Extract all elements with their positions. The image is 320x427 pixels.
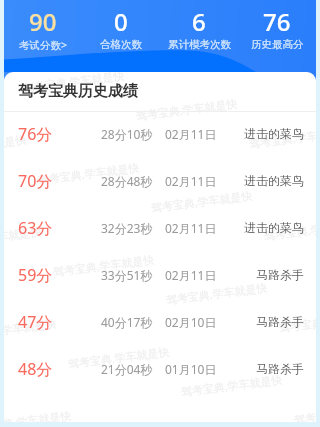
button[interactable]: 0 — [82, 5, 160, 51]
staticText: 28分10秒 — [101, 126, 153, 142]
staticText: 马路杀手 — [256, 267, 304, 282]
staticText: 历史最高分 — [251, 38, 304, 51]
button[interactable]: 59分 — [4, 253, 316, 300]
staticText: 马路杀手 — [256, 361, 304, 376]
staticText: 合格次数 — [100, 38, 142, 51]
staticText: 33分51秒 — [101, 267, 153, 283]
staticText: 21分04秒 — [101, 361, 153, 377]
staticText: 70分 — [18, 170, 53, 192]
staticText: 6 — [192, 5, 206, 38]
staticText: 累计模考次数 — [168, 38, 231, 51]
staticText: 32分23秒 — [101, 220, 153, 236]
staticText: 28分48秒 — [101, 173, 153, 189]
staticText: 59分 — [18, 264, 53, 286]
staticText: 进击的菜鸟 — [244, 126, 304, 141]
staticText: 0 — [114, 5, 128, 38]
staticText: 02月11日 — [165, 267, 217, 283]
staticText: 76分 — [18, 123, 53, 145]
staticText: 马路杀手 — [256, 314, 304, 329]
staticText: 进击的菜鸟 — [244, 220, 304, 235]
staticText: 76 — [263, 5, 291, 38]
staticText: 63分 — [18, 217, 53, 239]
button[interactable]: 76 — [238, 5, 316, 51]
staticText: 考试分数> — [19, 38, 68, 52]
button[interactable]: 48分 — [4, 347, 316, 394]
staticText: 48分 — [18, 358, 53, 380]
button[interactable]: 6 — [160, 5, 238, 51]
button[interactable]: 76分 — [4, 112, 316, 159]
staticText: 02月11日 — [165, 173, 217, 189]
staticText: 47分 — [18, 311, 53, 333]
button[interactable]: 90 — [4, 5, 82, 52]
button[interactable]: 70分 — [4, 159, 316, 206]
staticText: 驾考宝典历史成绩 — [18, 82, 138, 101]
staticText: 90 — [29, 5, 57, 38]
staticText: 40分17秒 — [101, 314, 153, 330]
staticText: 01月10日 — [165, 361, 217, 377]
button[interactable]: 63分 — [4, 206, 316, 253]
staticText: 02月11日 — [165, 220, 217, 236]
staticText: 02月10日 — [165, 314, 217, 330]
button[interactable]: 47分 — [4, 300, 316, 347]
staticText: 02月11日 — [165, 126, 217, 142]
staticText: 进击的菜鸟 — [244, 173, 304, 188]
